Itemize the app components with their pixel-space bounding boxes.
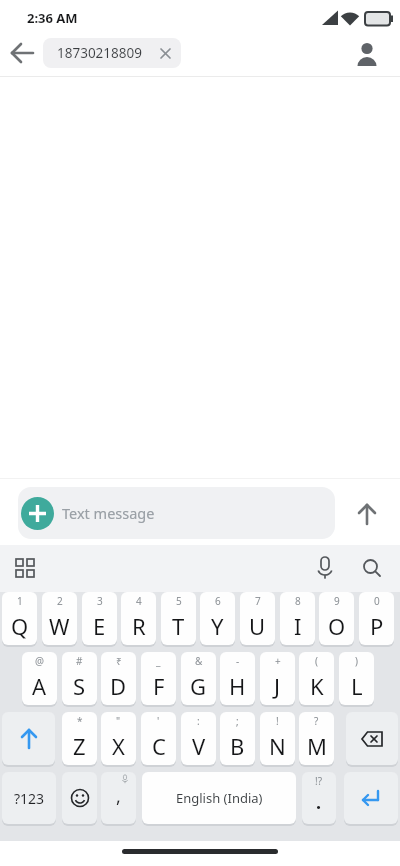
button[interactable]: 5 xyxy=(161,592,196,645)
button[interactable] xyxy=(21,497,54,530)
staticText: 2 xyxy=(57,594,63,608)
button[interactable]: ! xyxy=(260,712,295,765)
staticText: P xyxy=(370,611,384,641)
button[interactable]: ?123 xyxy=(2,772,56,824)
staticText: Z xyxy=(73,731,86,761)
staticText: ) xyxy=(355,654,358,668)
staticText: C xyxy=(152,731,166,761)
button[interactable]: * xyxy=(62,712,97,765)
button[interactable]: # xyxy=(62,652,97,705)
button[interactable]: 0 xyxy=(359,592,394,645)
staticText: M xyxy=(307,731,327,761)
button[interactable]: 3 xyxy=(82,592,117,645)
button[interactable]: ( xyxy=(299,652,334,705)
staticText: W xyxy=(49,611,70,641)
button[interactable] xyxy=(346,712,398,765)
button[interactable] xyxy=(62,772,97,824)
staticText: Text message xyxy=(62,503,155,523)
staticText: ( xyxy=(315,654,318,668)
staticText: E xyxy=(93,611,106,641)
staticText: _ xyxy=(156,654,161,668)
button[interactable] xyxy=(351,498,383,530)
button[interactable]: ' xyxy=(141,712,176,765)
staticText: @ xyxy=(35,654,44,668)
staticText: O xyxy=(328,611,346,641)
staticText: , xyxy=(116,784,121,809)
button[interactable]: ? xyxy=(299,712,334,765)
button[interactable] xyxy=(2,712,55,765)
staticText: D xyxy=(110,671,127,701)
staticText: + xyxy=(275,654,281,668)
button[interactable] xyxy=(12,555,38,581)
staticText: ' xyxy=(157,714,160,728)
button[interactable]: - xyxy=(220,652,255,705)
button[interactable]: 9 xyxy=(319,592,354,645)
staticText: ? xyxy=(314,714,319,728)
button[interactable] xyxy=(312,555,338,581)
staticText: T xyxy=(172,611,185,641)
staticText: 8 xyxy=(295,594,301,608)
button[interactable]: 18730218809 xyxy=(43,38,181,68)
staticText: 4 xyxy=(136,594,142,608)
staticText: 9 xyxy=(334,594,340,608)
staticText: ; xyxy=(236,714,239,728)
staticText: Y xyxy=(211,611,224,641)
button[interactable] xyxy=(344,772,398,824)
staticText: 7 xyxy=(255,594,261,608)
button[interactable]: 6 xyxy=(200,592,235,645)
staticText: R xyxy=(132,611,146,641)
button[interactable]: " xyxy=(101,712,136,765)
staticText: 3 xyxy=(97,594,103,608)
button[interactable] xyxy=(352,38,384,70)
staticText: !? xyxy=(315,774,323,788)
staticText: # xyxy=(76,654,83,668)
button[interactable]: 2 xyxy=(42,592,77,645)
staticText: X xyxy=(112,731,125,761)
staticText: H xyxy=(229,671,246,701)
staticText: ! xyxy=(276,714,279,728)
button[interactable]: 8 xyxy=(280,592,315,645)
button[interactable]: , xyxy=(101,772,136,824)
staticText: : xyxy=(197,714,200,728)
button[interactable]: ; xyxy=(220,712,255,765)
staticText: Q xyxy=(11,611,29,641)
staticText: ₹ xyxy=(116,654,122,668)
button[interactable]: & xyxy=(181,652,216,705)
staticText: 18730218809 xyxy=(57,44,142,62)
staticText: . xyxy=(316,790,322,815)
staticText: 6 xyxy=(215,594,221,608)
staticText: F xyxy=(153,671,165,701)
staticText: G xyxy=(190,671,207,701)
button[interactable] xyxy=(359,555,385,581)
staticText: 2:36 AM xyxy=(27,9,78,27)
button[interactable]: : xyxy=(181,712,216,765)
button[interactable]: _ xyxy=(141,652,176,705)
button[interactable]: ₹ xyxy=(101,652,136,705)
staticText: A xyxy=(32,671,47,701)
staticText: * xyxy=(77,714,83,728)
button[interactable]: English (India) xyxy=(142,772,296,824)
staticText: V xyxy=(192,731,206,761)
staticText: English (India) xyxy=(176,789,263,807)
button[interactable]: 1 xyxy=(2,592,37,645)
staticText: - xyxy=(236,654,240,668)
staticText: 1 xyxy=(17,594,23,608)
staticText: 0 xyxy=(374,594,380,608)
staticText: N xyxy=(269,731,286,761)
staticText: U xyxy=(249,611,266,641)
staticText: K xyxy=(310,671,324,701)
button[interactable] xyxy=(8,38,38,68)
staticText: I xyxy=(294,611,302,641)
button[interactable]: 4 xyxy=(121,592,156,645)
button[interactable]: 7 xyxy=(240,592,275,645)
staticText: " xyxy=(116,714,121,728)
button[interactable]: Text message xyxy=(18,487,335,539)
button[interactable]: + xyxy=(260,652,295,705)
button[interactable]: ) xyxy=(339,652,374,705)
staticText: S xyxy=(73,671,86,701)
staticText: J xyxy=(274,671,281,701)
staticText: ?123 xyxy=(14,789,45,808)
staticText: L xyxy=(351,671,363,701)
button[interactable]: !? xyxy=(302,772,336,824)
button[interactable]: @ xyxy=(22,652,57,705)
